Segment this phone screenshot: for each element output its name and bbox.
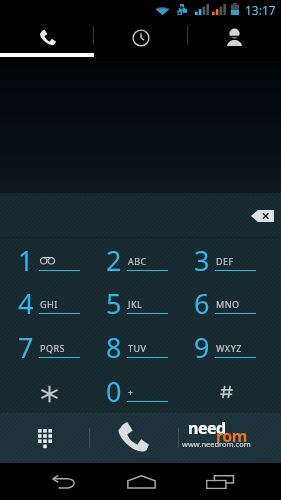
staticText: www.needrom.com [182, 439, 251, 449]
staticText: MNO [216, 298, 240, 310]
button[interactable]: 0 [93, 369, 181, 413]
button[interactable]: Backspace [251, 210, 274, 222]
button[interactable]: 7 [5, 325, 93, 369]
button[interactable]: 6 [181, 281, 269, 325]
button[interactable]: 8 [93, 325, 181, 369]
staticText: WXYZ [216, 342, 242, 354]
button[interactable] [181, 369, 269, 413]
staticText: PQRS [40, 342, 66, 354]
button[interactable]: Recents [189, 463, 251, 500]
staticText: need [188, 417, 226, 439]
button[interactable]: Dialer [0, 18, 93, 53]
button[interactable]: 5 [93, 281, 181, 325]
button[interactable]: Home [110, 463, 172, 500]
staticText: 13:17 [245, 2, 276, 18]
button[interactable]: 1 [5, 238, 93, 281]
staticText: JKL [128, 298, 143, 310]
button[interactable]: Call history [94, 18, 187, 53]
staticText: 5 [106, 285, 122, 322]
staticText: 6 [194, 285, 210, 322]
button[interactable] [5, 369, 93, 413]
staticText: 4 [18, 285, 34, 322]
staticText: 9 [194, 329, 210, 366]
button[interactable]: 2 [93, 238, 181, 281]
staticText: TUV [128, 342, 147, 354]
staticText: DEF [216, 255, 234, 267]
button[interactable]: Dialpad [0, 413, 89, 463]
button[interactable]: Contacts [188, 18, 281, 53]
button[interactable]: 9 [181, 325, 269, 369]
staticText: ABC [128, 255, 147, 267]
button[interactable]: 3 [181, 238, 269, 281]
staticText: 3 [194, 242, 210, 279]
staticText: GHI [40, 298, 58, 310]
staticText: 7 [18, 329, 34, 366]
button[interactable]: 4 [5, 281, 93, 325]
staticText: + [128, 386, 134, 398]
staticText: rom [216, 425, 247, 447]
button[interactable]: Back [32, 463, 94, 500]
staticText: 1 [18, 242, 34, 279]
staticText: 0 [106, 373, 122, 410]
button[interactable]: Call [90, 413, 178, 463]
staticText: 8 [106, 329, 122, 366]
staticText: 2 [106, 242, 122, 279]
